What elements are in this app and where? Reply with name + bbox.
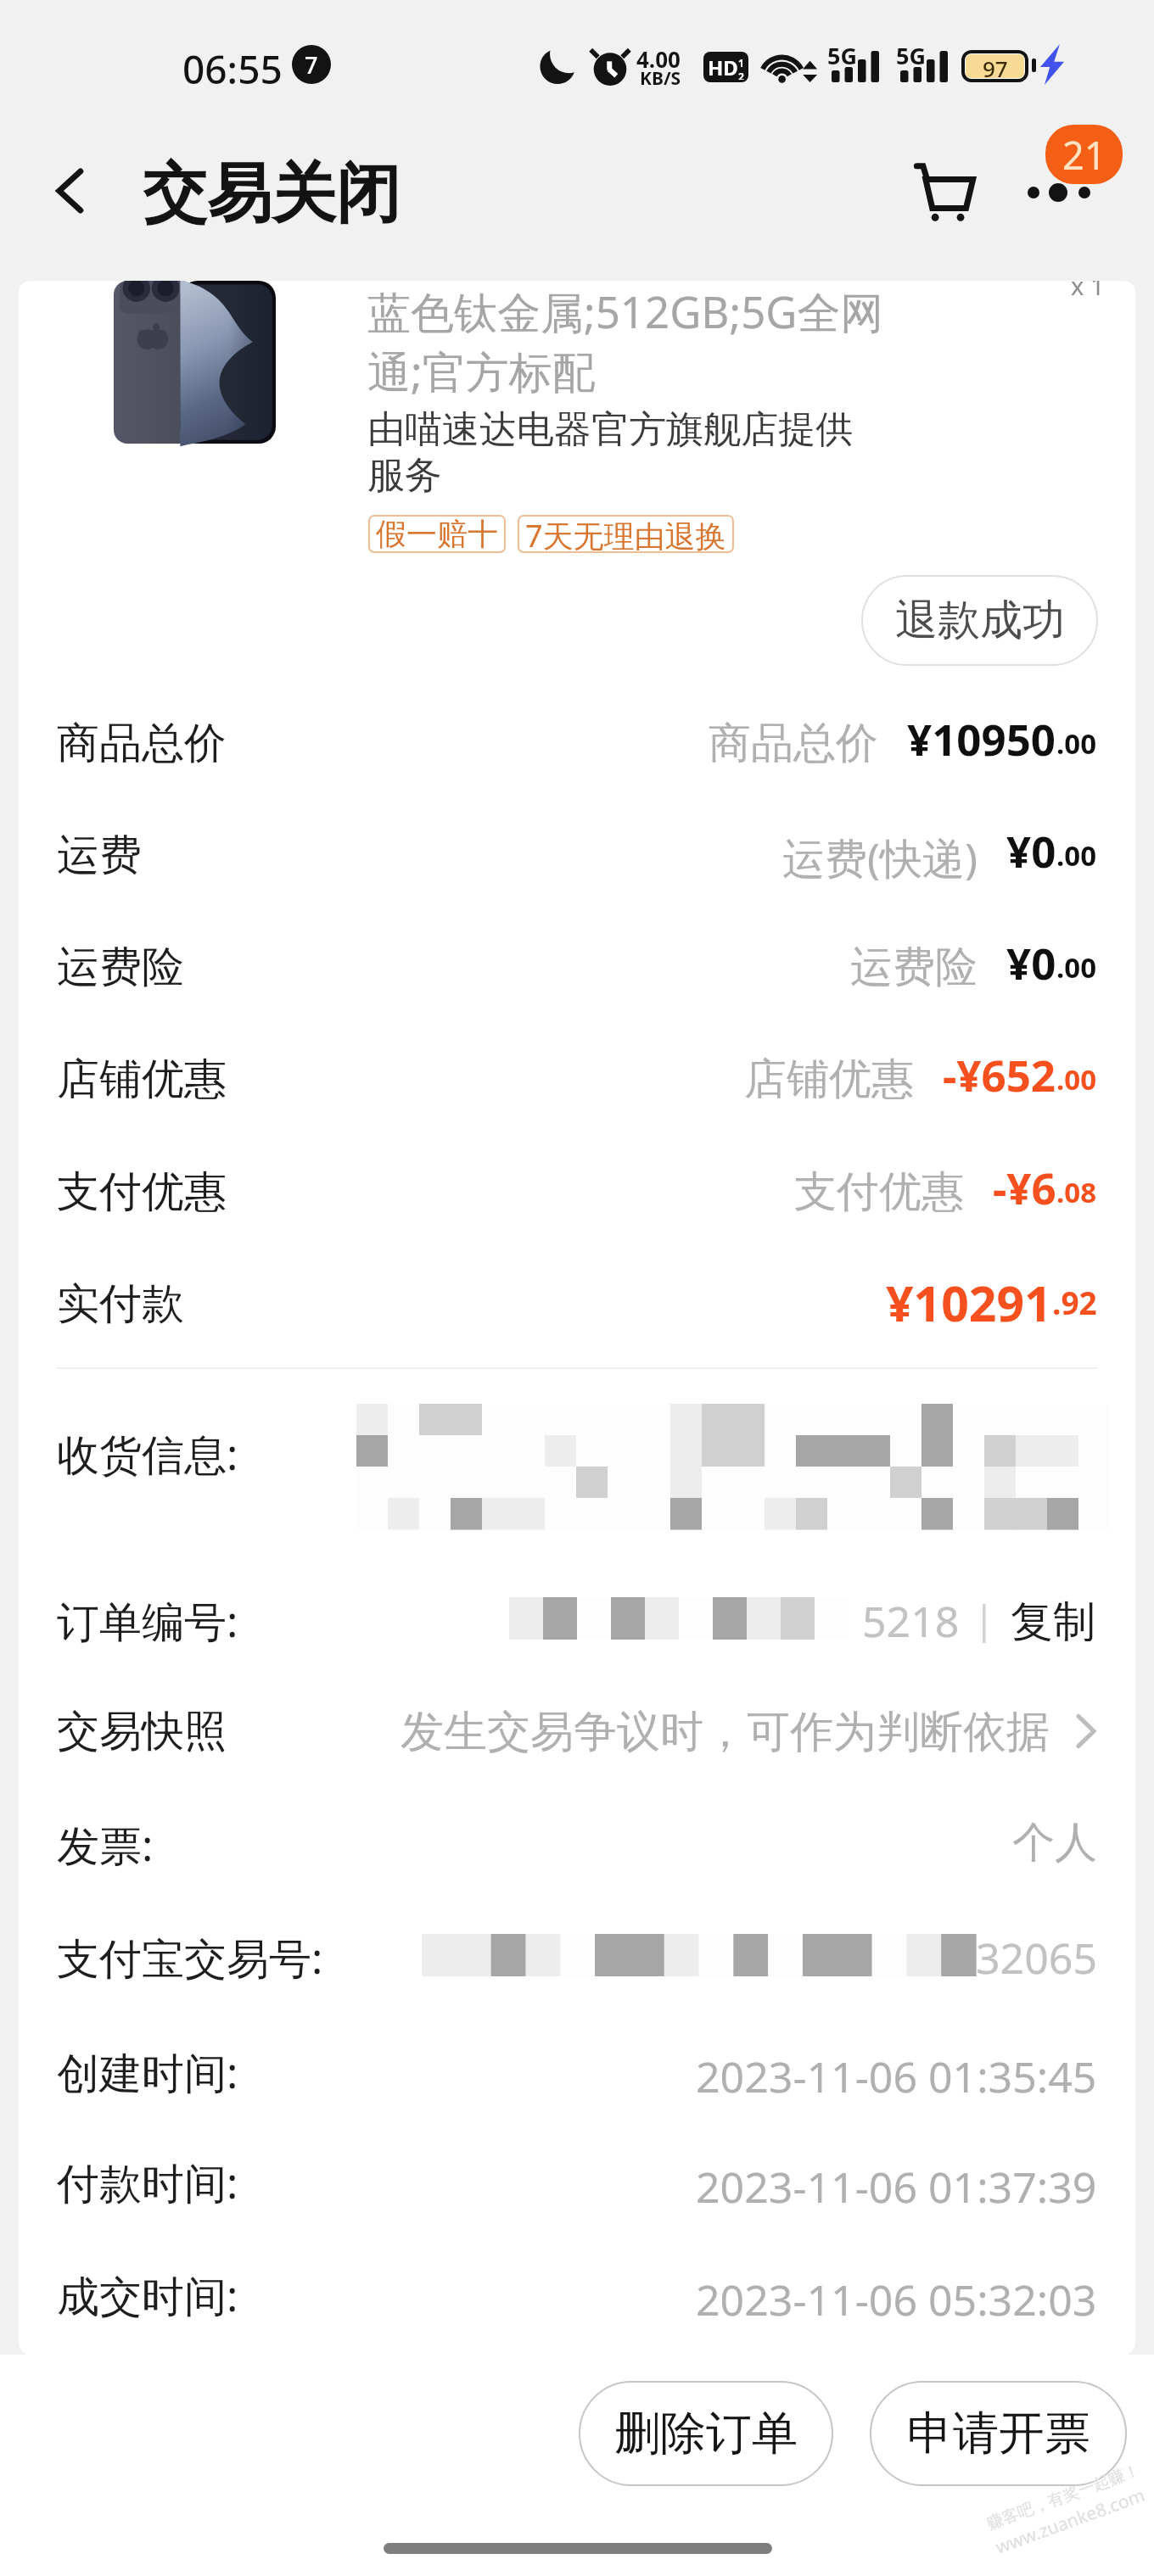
staticText: 5G [827,40,857,71]
staticText: 复制 [1011,1595,1095,1641]
staticText: 4.00 [636,44,681,74]
staticText: .00 [1056,1060,1097,1098]
staticText: 赚客吧，有奖一起赚！ [984,2460,1143,2534]
button[interactable]: Back [19,131,120,250]
staticText: 支付优惠 [57,1165,227,1218]
staticText: 97 [983,54,1008,77]
staticText: 创建时间: [57,2043,238,2096]
staticText: 订单编号: [57,1592,238,1645]
button[interactable]: 交易快照 [57,1705,1097,1757]
staticText: 06:55 [182,42,283,96]
button[interactable]: More options [1011,131,1137,250]
staticText: .00 [1056,724,1097,763]
staticText: www.zuanke8.com [992,2483,1149,2560]
staticText: 申请开票 [907,2405,1090,2462]
staticText: 运费 [57,829,142,881]
staticText: 收货信息: [57,1425,238,1478]
staticText: ¥0 [1006,821,1056,874]
staticText: 运费(快递) [782,829,978,881]
staticText: 32065 [976,1929,1097,1981]
staticText: .00 [1056,948,1097,986]
staticText: KB/S [640,66,681,91]
staticText: 个人 [1012,1816,1097,1869]
staticText: 假一赔十 [376,515,498,553]
staticText: 删除订单 [614,2405,798,2462]
staticText: 支付宝交易号: [57,1929,323,1981]
staticText: 商品总价 [57,717,227,769]
staticText: 运费险 [57,941,184,993]
staticText: -¥6 [993,1158,1056,1210]
staticText: ¥10950 [907,709,1056,762]
staticText: .92 [1052,1281,1097,1323]
button[interactable]: 退款成功 [861,575,1098,666]
staticText: x 1 [1071,281,1105,302]
staticText: 店铺优惠 [57,1053,227,1105]
staticText: 2023-11-06 01:35:45 [696,2048,1097,2100]
staticText: | [973,1592,995,1645]
staticText: 2 [738,70,744,80]
button[interactable]: Shopping cart [885,131,1004,250]
staticText: ¥10291 [886,1270,1052,1322]
staticText: HD [708,53,738,81]
staticText: 5G [896,40,926,71]
staticText: 成交时间: [57,2266,238,2319]
staticText: 交易快照 [57,1705,227,1757]
staticText: 商品总价 [709,717,878,769]
staticText: 付款时间: [57,2154,238,2206]
button[interactable]: 删除订单 [579,2381,833,2486]
staticText: 运费险 [850,941,978,993]
staticText: .08 [1056,1173,1097,1211]
staticText: 7天无理由退换 [525,515,726,553]
staticText: 发生交易争议时，可作为判断依据 [401,1705,1050,1757]
staticText: 21 [1062,129,1106,181]
staticText: 交易关闭 [143,154,401,235]
staticText: .00 [1056,836,1097,874]
staticText: 蓝色钛金属;512GB;5G全网 通;官方标配 [367,282,884,401]
staticText: 实付款 [57,1277,184,1330]
button[interactable]: 申请开票 [870,2381,1127,2486]
staticText: 5218 [862,1592,960,1645]
staticText: ¥0 [1006,933,1056,986]
staticText: 支付优惠 [794,1165,964,1218]
staticText: 由喵速达电器官方旗舰店提供 服务 [367,406,853,499]
staticText: 发票: [57,1816,154,1869]
staticText: 1 [738,56,744,70]
button[interactable]: 复制 [1009,1592,1097,1645]
staticText: 2023-11-06 01:37:39 [696,2158,1097,2210]
staticText: 退款成功 [895,594,1065,647]
staticText: 2023-11-06 05:32:03 [696,2271,1097,2323]
staticText: 店铺优惠 [744,1053,914,1105]
staticText: -¥652 [943,1045,1056,1098]
staticText: 7 [305,49,318,81]
